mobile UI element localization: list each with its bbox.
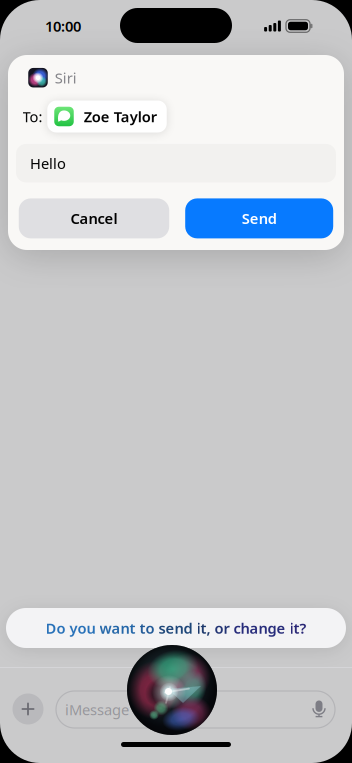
- staticText: Siri: [55, 68, 77, 87]
- button[interactable]: Send: [185, 198, 333, 238]
- staticText: Zoe Taylor: [84, 107, 157, 126]
- staticText: Send: [242, 209, 277, 228]
- staticText: 10:00: [45, 16, 81, 36]
- button[interactable]: Hello: [16, 144, 336, 182]
- button[interactable]: Cancel: [19, 198, 169, 238]
- staticText: Do you: [45, 618, 99, 638]
- staticText: to: [139, 618, 158, 638]
- staticText: iMessage: [65, 700, 129, 719]
- staticText: send: [158, 618, 196, 638]
- button[interactable]: Dictate: [311, 700, 327, 718]
- staticText: To:: [22, 107, 42, 126]
- staticText: or: [214, 618, 233, 638]
- staticText: Cancel: [70, 209, 117, 228]
- staticText: Hello: [30, 153, 66, 173]
- staticText: it,: [196, 618, 214, 638]
- button[interactable]: Zoe Taylor: [47, 100, 167, 132]
- button[interactable]: Add attachment: [12, 693, 43, 724]
- staticText: want: [99, 618, 139, 638]
- staticText: it?: [289, 618, 306, 638]
- staticText: change: [233, 618, 289, 638]
